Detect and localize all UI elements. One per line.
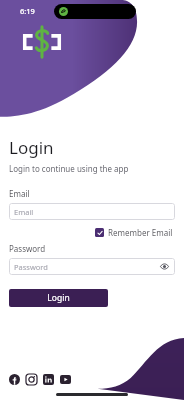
staticText: Password	[14, 262, 48, 272]
button[interactable]: Facebook	[8, 373, 21, 386]
button[interactable]: Instagram	[25, 373, 38, 386]
staticText: 6:19	[20, 6, 35, 16]
button[interactable]: Login	[9, 289, 108, 307]
button[interactable]: Show password	[159, 261, 170, 272]
button[interactable]: Email	[9, 203, 175, 220]
button[interactable]: Password	[9, 258, 175, 275]
staticText: Email	[14, 207, 34, 217]
button[interactable]: LinkedIn	[42, 373, 55, 386]
button[interactable]: Remember Email	[93, 225, 175, 240]
staticText: Email	[9, 188, 30, 199]
staticText: Login	[47, 292, 70, 304]
staticText: Remember Email	[108, 227, 173, 238]
staticText: Password	[9, 243, 46, 254]
staticText: Login	[9, 136, 54, 159]
staticText: Login to continue using the app	[9, 163, 129, 174]
button[interactable]: YouTube	[59, 373, 72, 386]
